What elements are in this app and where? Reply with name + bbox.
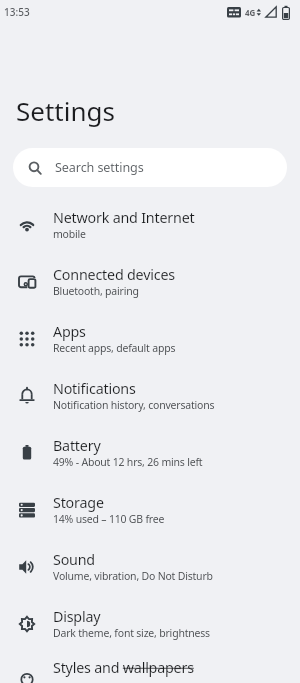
button[interactable]: Battery	[0, 424, 300, 481]
staticText: Bluetooth, pairing	[53, 284, 139, 298]
staticText: Dark theme, font size, brightness	[53, 626, 210, 640]
staticText: Sound	[53, 550, 95, 569]
staticText: Volume, vibration, Do Not Disturb	[53, 569, 213, 583]
staticText: 14% used – 110 GB free	[53, 512, 165, 526]
staticText: Notifications	[53, 379, 136, 398]
staticText: Storage	[53, 493, 104, 512]
staticText: Apps	[53, 322, 86, 341]
staticText: Search settings	[55, 159, 144, 176]
staticText: Connected devices	[53, 265, 175, 284]
button[interactable]: Network and Internet	[0, 196, 300, 253]
button[interactable]: Styles and wallpapers	[0, 652, 300, 683]
button[interactable]: Sound	[0, 538, 300, 595]
staticText: Battery	[53, 436, 101, 455]
button[interactable]: Storage	[0, 481, 300, 538]
staticText: Styles and wallpapers	[53, 658, 194, 677]
staticText: 13:53	[4, 5, 30, 19]
staticText: Display	[53, 607, 101, 626]
button[interactable]: Search settings	[13, 148, 287, 187]
button[interactable]: Apps	[0, 310, 300, 367]
staticText: Settings	[16, 93, 115, 128]
staticText: Notification history, conversations	[53, 398, 215, 412]
staticText: 4G	[245, 7, 256, 18]
staticText: mobile	[53, 227, 86, 241]
button[interactable]: Notifications	[0, 367, 300, 424]
button[interactable]: Connected devices	[0, 253, 300, 310]
staticText: 49% - About 12 hrs, 26 mins left	[53, 455, 203, 469]
staticText: Recent apps, default apps	[53, 341, 176, 355]
staticText: Network and Internet	[53, 208, 195, 227]
button[interactable]: Display	[0, 595, 300, 652]
